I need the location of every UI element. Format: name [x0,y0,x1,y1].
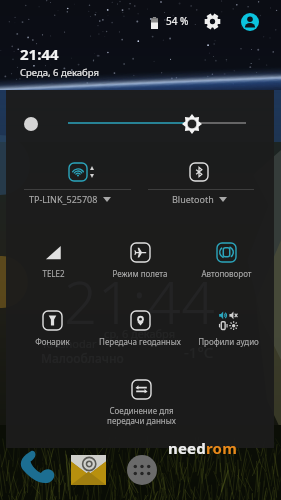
staticText: 54 % [166,14,189,28]
staticText: 21:44 [20,44,59,64]
staticText: Фонарик [35,336,70,347]
button[interactable]: Передача геоданных [93,311,187,359]
button[interactable]: User account [241,13,259,31]
staticText: rom [206,438,238,458]
staticText: -1°C [184,342,214,362]
staticText: Малооблачно [41,350,124,366]
staticText: Режим полета [112,268,168,279]
button[interactable]: Автоповорот [179,243,273,291]
button[interactable]: Wi-Fi [69,163,87,181]
staticText: Krasnodar [43,336,97,351]
staticText: need [168,438,206,458]
button[interactable]: All apps [127,455,157,485]
button[interactable]: Minimum brightness [24,117,38,131]
button[interactable]: Фонарик [5,311,99,359]
staticText: Bluetooth [172,193,214,205]
button[interactable]: Соединение для передачи данных [94,380,188,428]
button[interactable]: Email [71,455,106,485]
staticText: Соединение для передачи данных [107,405,176,426]
button[interactable]: Bluetooth [139,190,259,208]
staticText: ср, 6 декабря [104,326,176,341]
button[interactable]: Bluetooth [190,163,208,181]
staticText: Профили аудио [198,336,259,347]
staticText: Автоповорот [201,268,252,279]
button[interactable]: Settings [204,13,221,30]
staticText: TP-LINK_525708 [29,193,98,205]
staticText: TELE2 [42,268,65,279]
staticText: Передача геоданных [99,336,181,347]
staticText: Среда, 6 декабря [20,66,99,79]
staticText: 21:44 [64,262,216,341]
button[interactable]: Brightness [182,114,202,134]
button[interactable]: Профили аудио [181,311,275,359]
button[interactable]: TELE2 [6,243,100,291]
button[interactable]: Phone [18,450,56,486]
button[interactable]: Режим полета [93,243,187,291]
button[interactable]: TP-LINK_525708 [10,190,130,208]
